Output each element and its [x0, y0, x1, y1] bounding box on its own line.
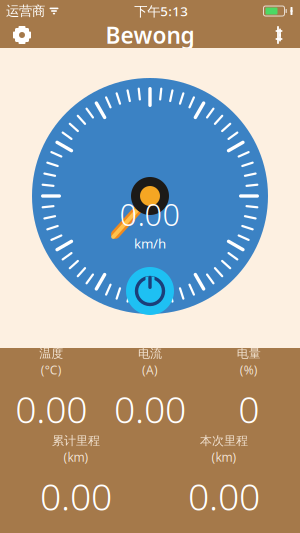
staticText: (km) [63, 449, 88, 465]
staticText: 0.00 [15, 384, 87, 433]
staticText: (%) [240, 362, 258, 378]
staticText: (km) [211, 449, 236, 465]
button[interactable]: Power [126, 267, 174, 315]
staticText: 温度 [39, 346, 63, 361]
staticText: 0.00 [114, 384, 186, 433]
button[interactable]: Settings [0, 22, 44, 48]
button[interactable]: Bluetooth [256, 22, 300, 48]
staticText: 0.00 [119, 194, 180, 234]
staticText: 0.00 [188, 471, 260, 521]
staticText: 0 [238, 384, 259, 433]
staticText: (A) [142, 362, 158, 378]
staticText: Bewong [105, 20, 194, 50]
staticText: 下午5:13 [134, 2, 188, 20]
staticText: 电流 [138, 346, 162, 361]
staticText: (°C) [41, 362, 62, 378]
staticText: 累计里程 [52, 433, 100, 448]
staticText: 运营商 [6, 3, 45, 19]
staticText: 电量 [237, 346, 261, 361]
staticText: 本次里程 [200, 433, 248, 448]
staticText: km/h [134, 234, 166, 252]
staticText: 0.00 [40, 471, 112, 521]
